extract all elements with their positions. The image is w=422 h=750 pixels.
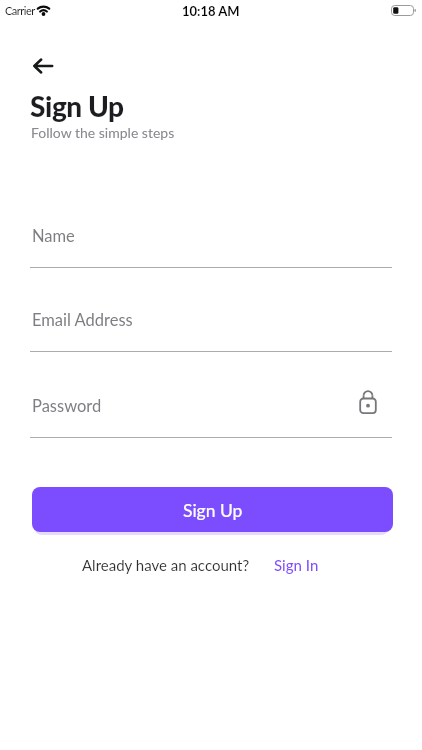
staticText: Sign Up: [183, 500, 243, 521]
button[interactable]: Email Address: [30, 301, 392, 352]
staticText: Follow the simple steps: [31, 124, 175, 141]
staticText: Email Address: [32, 310, 133, 330]
button[interactable]: Sign In: [274, 556, 319, 574]
staticText: Name: [32, 226, 75, 246]
button[interactable]: Password: [30, 387, 392, 438]
staticText: Password: [32, 396, 102, 416]
staticText: Already have an account?: [82, 556, 250, 574]
button[interactable]: Sign Up: [32, 487, 393, 532]
button[interactable]: Name: [30, 217, 392, 268]
staticText: Sign Up: [30, 89, 124, 123]
button[interactable]: [25, 48, 61, 84]
staticText: Sign In: [274, 556, 319, 574]
staticText: Carrier: [5, 4, 35, 17]
staticText: 10:18 AM: [182, 3, 240, 19]
